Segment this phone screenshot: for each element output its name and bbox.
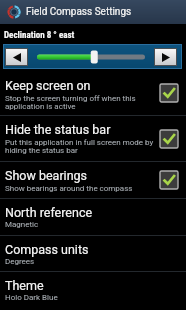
button[interactable]: Decrease declination	[5, 48, 28, 66]
staticText: Declination 8 ° east	[4, 30, 75, 41]
button[interactable]: North reference	[0, 199, 186, 235]
staticText: Field Compass Settings	[26, 6, 132, 18]
staticText: North reference	[5, 205, 93, 220]
staticText: Hide the status bar	[5, 122, 111, 137]
button[interactable]: Toggle setting	[160, 171, 178, 189]
button[interactable]: Hide the status bar	[0, 116, 186, 161]
staticText: Holo Dark Blue	[5, 293, 58, 302]
button[interactable]: Increase declination	[154, 48, 177, 66]
button[interactable]: Toggle setting	[160, 84, 178, 102]
staticText: Magnetic	[5, 220, 39, 229]
button[interactable]: Compass units	[0, 236, 186, 271]
staticText: Show bearings	[5, 168, 88, 183]
staticText: Degrees	[5, 257, 35, 266]
button[interactable]: Show bearings	[0, 162, 186, 198]
staticText: Keep screen on	[5, 78, 91, 93]
staticText: Theme	[5, 278, 44, 293]
staticText: Stop the screen turning off when this ap…	[5, 94, 155, 111]
button[interactable]: Keep screen on	[0, 70, 186, 115]
button[interactable]: Theme	[0, 272, 186, 308]
button[interactable]: Toggle setting	[160, 130, 178, 148]
staticText: Show bearings around the compass	[5, 184, 133, 193]
staticText: Put this application in full screen mode…	[5, 138, 155, 155]
staticText: Compass units	[5, 242, 89, 257]
